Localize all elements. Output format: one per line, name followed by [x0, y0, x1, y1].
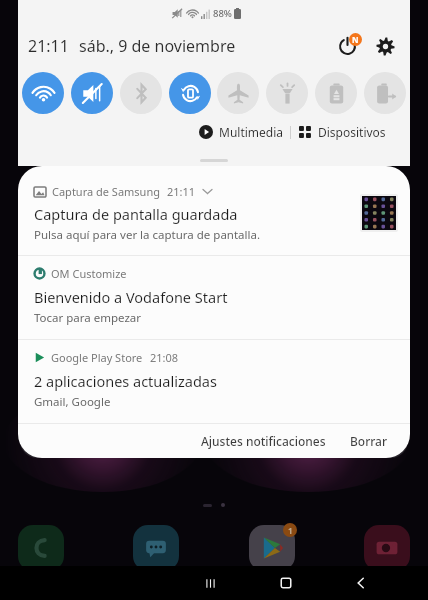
- staticText: Multimedia: [219, 124, 284, 140]
- button[interactable]: Captura de Samsung: [18, 176, 410, 255]
- staticText: Gmail, Google: [34, 394, 111, 410]
- button[interactable]: Linterna: [266, 72, 308, 114]
- staticText: Bienvenido a Vodafone Start: [34, 287, 228, 307]
- staticText: Google Play Store: [51, 350, 143, 365]
- staticText: 1: [288, 525, 293, 536]
- staticText: 21:08: [150, 350, 179, 365]
- staticText: Tocar para empezar: [34, 310, 142, 326]
- button[interactable]: Multimedia: [193, 120, 290, 144]
- staticText: Di "Ok Google": [293, 434, 371, 449]
- staticText: Captura de Samsung: [52, 184, 160, 199]
- button[interactable]: Inicio: [248, 566, 323, 600]
- staticText: 21:11: [28, 35, 69, 57]
- staticText: Dispositivos: [318, 124, 386, 140]
- button[interactable]: Silencio: [71, 72, 113, 114]
- button[interactable]: Rotación automática: [169, 72, 211, 114]
- staticText: vodafone ES: [182, 573, 246, 588]
- button[interactable]: Google Play Store: [18, 340, 410, 423]
- button[interactable]: Play Store: [249, 525, 295, 571]
- button[interactable]: Atrás: [323, 566, 398, 600]
- button[interactable]: App: [18, 525, 64, 571]
- button[interactable]: Ahorro de energía: [315, 72, 357, 114]
- staticText: Ajustes notificaciones: [201, 433, 326, 449]
- button[interactable]: Di "Ok Google": [20, 424, 408, 458]
- button[interactable]: App: [133, 525, 179, 571]
- staticText: 21:11: [167, 184, 196, 199]
- button[interactable]: Ajustes notificaciones: [195, 427, 332, 455]
- staticText: Captura de pantalla guardada: [34, 204, 238, 224]
- button[interactable]: Dispositivos: [291, 120, 394, 144]
- button[interactable]: Bluetooth: [120, 72, 162, 114]
- staticText: Borrar: [350, 433, 388, 449]
- button[interactable]: Ajustes: [368, 29, 402, 63]
- button[interactable]: OM Customize: [18, 256, 410, 339]
- staticText: sáb., 9 de noviembre: [79, 35, 236, 57]
- button[interactable]: Compartir batería: [364, 72, 406, 114]
- button[interactable]: Modo avión: [217, 72, 259, 114]
- button[interactable]: App: [364, 525, 410, 571]
- staticText: N: [352, 34, 359, 45]
- staticText: 88%: [213, 7, 232, 20]
- staticText: OM Customize: [51, 266, 127, 281]
- staticText: 2 aplicaciones actualizadas: [34, 371, 217, 391]
- button[interactable]: Recientes: [173, 566, 248, 600]
- button[interactable]: Wi-Fi: [22, 72, 64, 114]
- button[interactable]: Apagar: [330, 29, 364, 63]
- button[interactable]: Borrar: [346, 427, 392, 455]
- staticText: Pulsa aquí para ver la captura de pantal…: [34, 227, 261, 243]
